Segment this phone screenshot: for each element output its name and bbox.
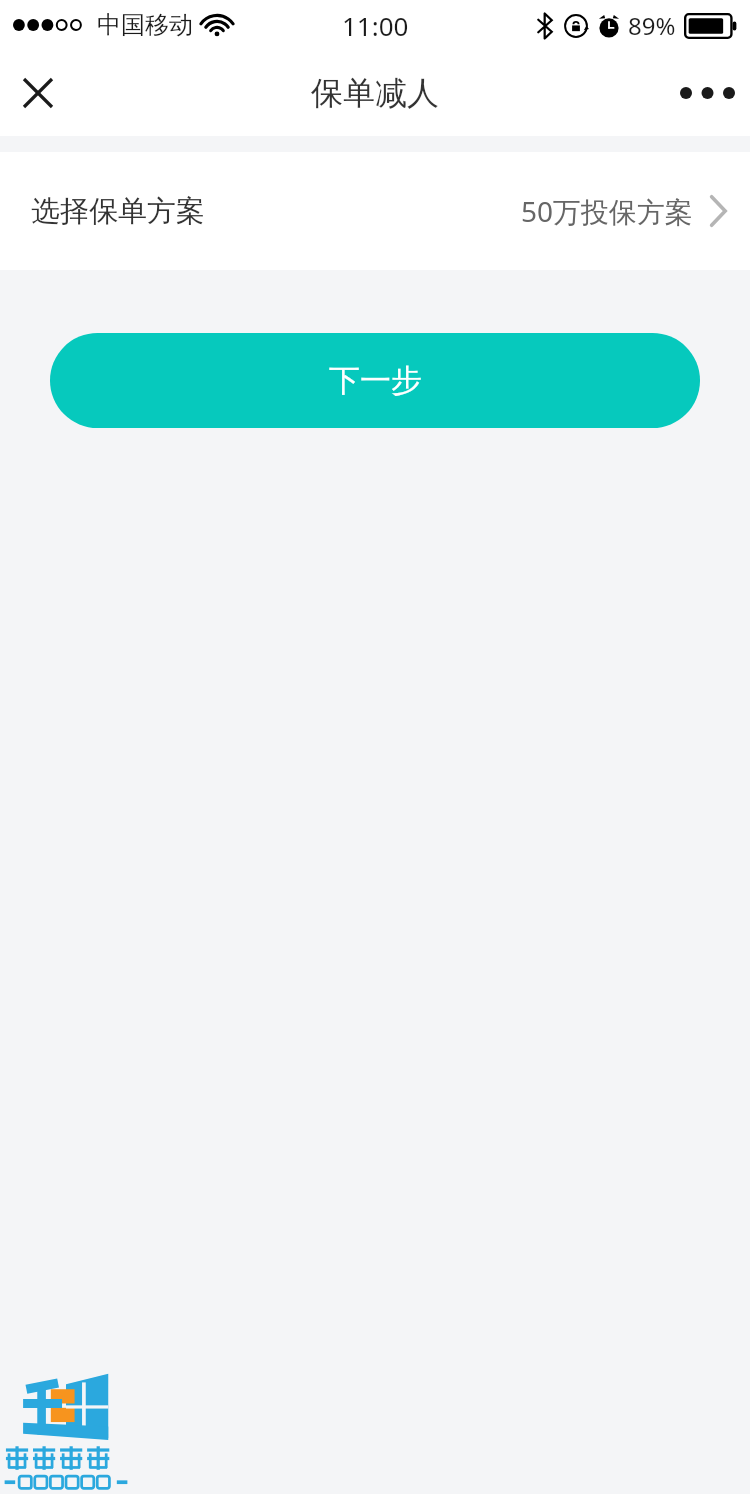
- staticText: 89%: [628, 9, 676, 42]
- staticText: 保单减人: [311, 73, 439, 113]
- staticText: 下一步: [329, 361, 422, 400]
- button[interactable]: 更多: [664, 50, 750, 136]
- button[interactable]: 选择保单方案: [0, 152, 750, 270]
- staticText: 11:00: [342, 8, 409, 43]
- staticText: 中国移动: [97, 10, 193, 40]
- staticText: 50万投保方案: [521, 192, 694, 230]
- button[interactable]: 下一步: [50, 333, 700, 428]
- staticText: 选择保单方案: [31, 193, 205, 230]
- button[interactable]: 关闭: [0, 55, 76, 131]
